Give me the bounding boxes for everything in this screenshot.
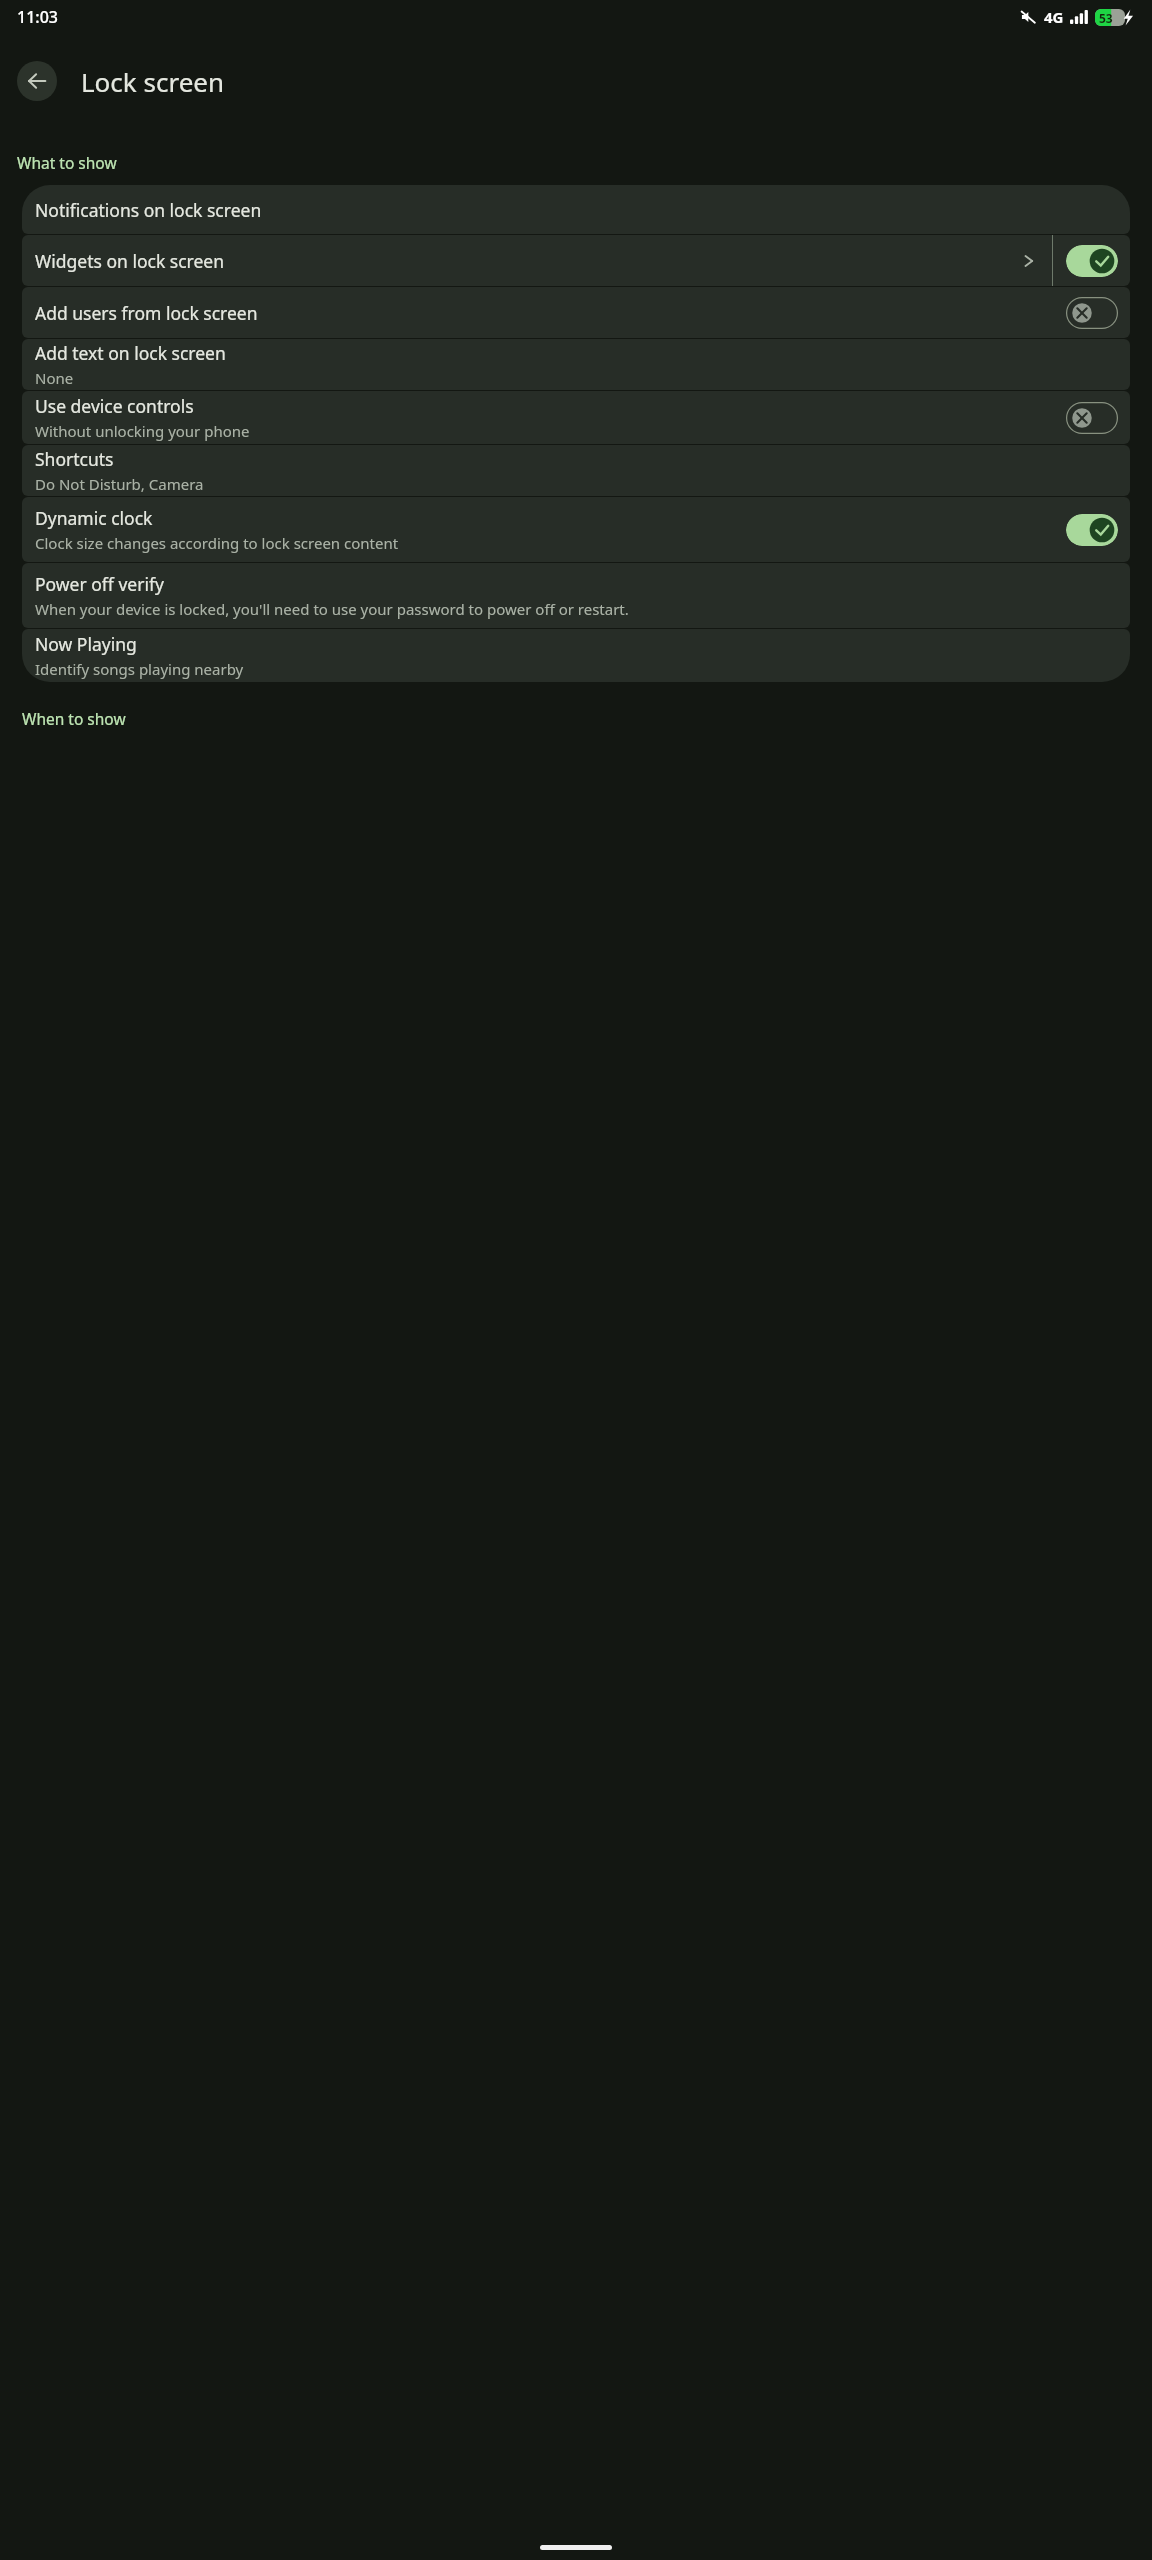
button[interactable]: Toggle on (1066, 514, 1118, 546)
staticText: When your device is locked, you'll need … (35, 599, 629, 619)
staticText: Add text on lock screen (35, 341, 226, 365)
button[interactable]: Power off verify (22, 563, 1130, 628)
staticText: When to show (22, 708, 126, 729)
button[interactable]: Toggle off (1066, 402, 1118, 434)
staticText: Shortcuts (35, 447, 114, 471)
staticText: Notifications on lock screen (35, 198, 262, 222)
staticText: Now Playing (35, 632, 137, 656)
staticText: Lock screen (81, 64, 225, 99)
button[interactable]: Use device controls (22, 391, 1130, 444)
staticText: 4G (1044, 7, 1064, 27)
button[interactable]: Widgets on lock screen (22, 235, 1130, 286)
button[interactable]: Toggle off (1066, 297, 1118, 329)
button[interactable]: Now Playing (22, 629, 1130, 682)
button[interactable]: Add text on lock screen (22, 339, 1130, 390)
button[interactable]: Notifications on lock screen (22, 185, 1130, 234)
staticText: Without unlocking your phone (35, 421, 250, 441)
button[interactable]: Dynamic clock (22, 497, 1130, 562)
button[interactable]: Back (17, 61, 57, 101)
button[interactable]: Toggle on (1066, 245, 1118, 277)
staticText: 11:03 (17, 6, 58, 28)
staticText: Widgets on lock screen (35, 249, 224, 273)
staticText: Use device controls (35, 394, 194, 418)
staticText: Clock size changes according to lock scr… (35, 533, 399, 553)
staticText: Power off verify (35, 572, 164, 596)
staticText: None (35, 368, 74, 388)
button[interactable]: Shortcuts (22, 445, 1130, 496)
staticText: What to show (17, 152, 117, 173)
staticText: 53 (1099, 10, 1113, 26)
staticText: Identify songs playing nearby (35, 659, 244, 679)
button[interactable]: Add users from lock screen (22, 287, 1130, 338)
staticText: Add users from lock screen (35, 301, 258, 325)
staticText: Dynamic clock (35, 506, 153, 530)
staticText: Do Not Disturb, Camera (35, 474, 204, 494)
